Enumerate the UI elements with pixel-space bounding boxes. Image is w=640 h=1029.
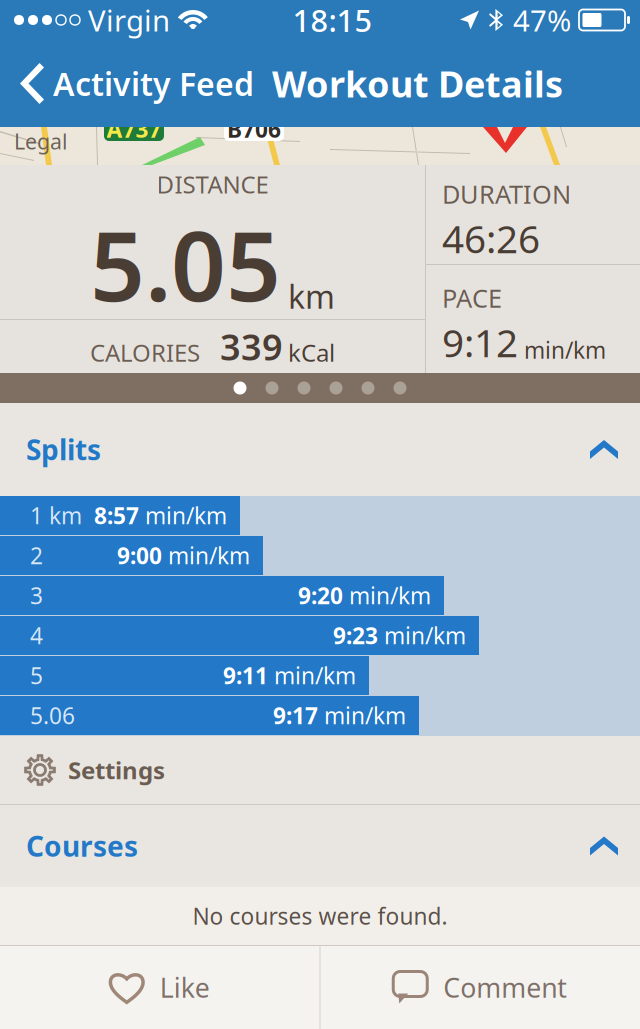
staticText: B706 [227,114,281,144]
staticText: DURATION [442,177,571,211]
button[interactable]: Like [0,946,319,1029]
staticText: CALORIES [90,336,200,368]
staticText: 9:17 [273,700,318,730]
staticText: 4 [30,620,43,650]
staticText: DISTANCE [156,168,268,200]
staticText: min/km [378,620,466,650]
staticText: Splits [26,431,101,468]
staticText: 9:20 [298,580,343,610]
staticText: 5.05 [90,200,281,328]
staticText: 339 [220,323,283,370]
staticText: min/km [139,500,227,530]
staticText: Comment [443,970,567,1005]
staticText: 2 [30,540,43,570]
staticText: A737 [106,114,161,144]
staticText: 9:11 [223,660,268,690]
staticText: 3 [30,580,43,610]
staticText: 8:57 [94,500,139,530]
staticText: 47% [513,0,571,39]
staticText: 1 km [30,500,82,530]
staticText: No courses were found. [192,901,447,931]
staticText: min/km [268,660,356,690]
staticText: min/km [343,580,431,610]
button[interactable]: Comment [320,946,640,1029]
button[interactable]: Courses [0,805,640,887]
button[interactable]: Settings [0,736,640,804]
staticText: 9:23 [333,620,378,650]
staticText: 5.06 [30,700,75,730]
staticText: Legal [14,127,68,155]
staticText: 5 [30,660,43,690]
staticText: min/km [162,540,250,570]
staticText: Like [160,970,210,1005]
staticText: PACE [442,281,502,315]
staticText: km [288,275,335,318]
button[interactable]: Activity Feed [0,40,258,127]
staticText: Virgin [80,0,170,39]
staticText: kCal [288,336,335,368]
staticText: Settings [68,754,165,786]
staticText: min/km [318,700,406,730]
staticText: 9:00 [117,540,162,570]
staticText: 46:26 [442,213,540,264]
staticText: min/km [524,335,606,365]
staticText: 9:12 [442,317,518,368]
staticText: Courses [26,827,138,865]
staticText: Activity Feed [53,62,254,105]
staticText: Workout Details [272,60,563,107]
staticText: 18:15 [292,0,372,40]
button[interactable]: Splits [0,403,640,496]
